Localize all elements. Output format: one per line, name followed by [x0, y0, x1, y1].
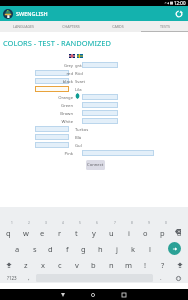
button[interactable]: ?	[154, 256, 171, 273]
staticText: m	[125, 260, 133, 270]
staticText: Svart	[75, 79, 86, 85]
button[interactable]: .	[155, 272, 167, 284]
button[interactable]	[35, 78, 69, 84]
staticText: 0	[165, 221, 167, 225]
staticText: 9	[148, 221, 150, 225]
button[interactable]: n	[103, 256, 120, 273]
staticText: g	[81, 244, 86, 254]
button[interactable]: å	[171, 220, 188, 245]
staticText: j	[116, 244, 118, 254]
button[interactable]: Refresh	[172, 7, 186, 21]
button[interactable]: x	[34, 256, 51, 273]
button[interactable]: Emoji	[172, 272, 184, 284]
staticText: 3	[45, 221, 47, 225]
button[interactable]: LANGUAGES	[0, 21, 47, 31]
staticText: å	[177, 228, 182, 238]
staticText: LANGUAGES	[13, 24, 34, 29]
button[interactable]: ?123	[1, 272, 23, 284]
button[interactable]	[82, 102, 118, 108]
button[interactable]: a	[10, 240, 25, 257]
button[interactable]: i	[120, 220, 137, 245]
staticText: !	[144, 260, 147, 270]
button[interactable]: ,	[23, 272, 35, 284]
button[interactable]	[82, 118, 118, 124]
button[interactable]: f	[60, 240, 75, 257]
button[interactable]	[82, 110, 118, 116]
staticText: Orange	[58, 95, 73, 101]
button[interactable]: y	[85, 220, 102, 245]
button[interactable]: e	[34, 220, 51, 245]
staticText: Blå	[75, 135, 82, 141]
staticText: t	[75, 228, 78, 238]
button[interactable]	[35, 134, 69, 140]
staticText: f	[66, 244, 69, 254]
staticText: l	[149, 244, 151, 254]
staticText: .	[160, 274, 162, 282]
staticText: Röd	[75, 71, 83, 77]
staticText: Green	[60, 103, 73, 109]
button[interactable]	[35, 126, 69, 132]
staticText: x	[41, 260, 45, 270]
staticText: 1	[11, 221, 13, 225]
button[interactable]: d	[43, 240, 58, 257]
button[interactable]: TESTS	[141, 21, 188, 31]
button[interactable]	[82, 94, 118, 100]
button[interactable]: Connect	[86, 160, 105, 170]
staticText: Pink	[64, 151, 73, 157]
button[interactable]: p	[154, 220, 171, 245]
staticText: CHAPTERS	[62, 24, 80, 29]
button[interactable]: Back	[57, 289, 69, 300]
button[interactable]: Backspace	[171, 224, 185, 238]
button[interactable]: Shift	[0, 256, 17, 273]
staticText: ,	[28, 274, 30, 282]
button[interactable]: Recents	[118, 289, 130, 300]
button[interactable]: w	[17, 220, 34, 245]
staticText: COLORS - TEST - RANDOMIZED	[3, 38, 111, 48]
button[interactable]	[35, 142, 69, 148]
button[interactable]: z	[17, 256, 34, 273]
button[interactable]: c	[51, 256, 68, 273]
staticText: White	[61, 119, 73, 125]
button[interactable]: t	[68, 220, 85, 245]
button[interactable]: Enter	[168, 242, 181, 255]
button[interactable]: b	[85, 256, 102, 273]
staticText: u	[109, 228, 114, 238]
button[interactable]	[35, 70, 69, 76]
staticText: Turkos	[75, 127, 89, 133]
staticText: grå	[75, 63, 82, 69]
staticText: Grey	[63, 63, 73, 69]
button[interactable]: k	[126, 240, 141, 257]
staticText: b	[91, 260, 96, 270]
staticText: o	[143, 228, 148, 238]
button[interactable]	[35, 86, 69, 92]
button[interactable]: v	[68, 256, 85, 273]
button[interactable]: CARDS	[94, 21, 141, 31]
button[interactable]: g	[76, 240, 91, 257]
button[interactable]: !	[137, 256, 154, 273]
staticText: 12:00	[174, 0, 186, 6]
button[interactable]: q	[0, 220, 17, 245]
staticText: v	[75, 260, 79, 270]
staticText: 7	[114, 221, 116, 225]
button[interactable]: s	[27, 240, 42, 257]
staticText: i	[128, 228, 130, 238]
button[interactable]: l	[142, 240, 157, 257]
button[interactable]: CHAPTERS	[47, 21, 94, 31]
staticText: d	[48, 244, 53, 254]
button[interactable]: o	[137, 220, 154, 245]
button[interactable]	[82, 150, 154, 156]
button[interactable]: Home	[87, 289, 99, 300]
button[interactable]: j	[109, 240, 124, 257]
staticText: 5	[79, 221, 81, 225]
button[interactable]	[82, 62, 118, 68]
button[interactable]: h	[93, 240, 108, 257]
button[interactable]: m	[120, 256, 137, 273]
button[interactable]: Shift	[171, 256, 188, 273]
staticText: c	[58, 260, 62, 270]
button[interactable]: r	[51, 220, 68, 245]
staticText: Brown	[60, 111, 73, 117]
staticText: TESTS	[160, 24, 170, 29]
button[interactable]: u	[103, 220, 120, 245]
staticText: CARDS	[112, 24, 124, 29]
